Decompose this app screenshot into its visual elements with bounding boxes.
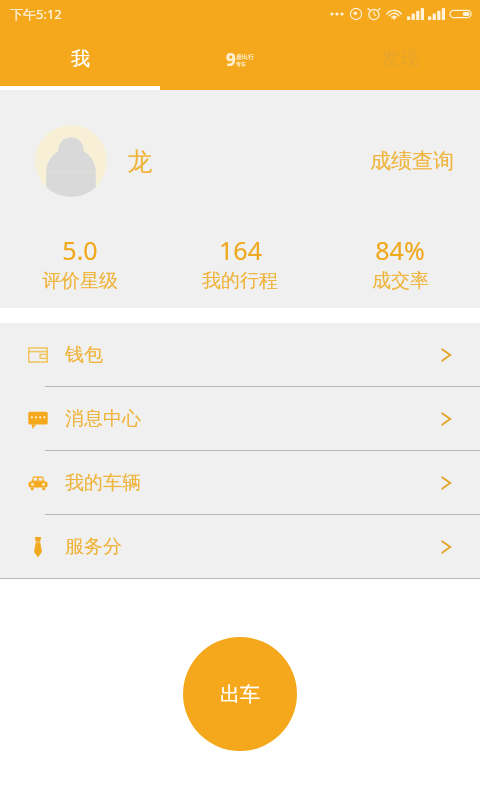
button[interactable]: 消息中心	[0, 387, 480, 450]
staticText: 座出行	[236, 53, 254, 61]
staticText: 钱包	[65, 343, 103, 367]
staticText: 服务分	[65, 535, 122, 559]
staticText: 发现	[381, 47, 419, 71]
staticText: 成交率	[372, 269, 429, 293]
staticText: 我	[71, 47, 90, 71]
button[interactable]: 我	[0, 28, 160, 90]
button[interactable]: 头像	[35, 125, 107, 197]
button[interactable]: 出车	[183, 637, 297, 751]
staticText: 9	[226, 48, 236, 71]
staticText: 84%	[375, 233, 425, 267]
staticText: 出车	[220, 682, 260, 707]
button[interactable]: 164	[160, 233, 320, 293]
staticText: 我的车辆	[65, 471, 141, 495]
staticText: 龙	[127, 146, 152, 177]
staticText: 评价星级	[42, 269, 118, 293]
staticText: 成绩查询	[370, 148, 454, 174]
staticText: 消息中心	[65, 407, 141, 431]
button[interactable]: 钱包	[0, 323, 480, 386]
button[interactable]: 服务分	[0, 515, 480, 578]
button[interactable]: 5.0	[0, 233, 160, 293]
button[interactable]: 84%	[320, 233, 480, 293]
button[interactable]: 我的车辆	[0, 451, 480, 514]
staticText: 5.0	[62, 233, 98, 267]
staticText: 专车	[236, 61, 246, 67]
button[interactable]: 成绩查询	[366, 144, 458, 178]
button[interactable]: 9座出行	[160, 28, 320, 90]
staticText: 下午5:12	[10, 5, 62, 23]
staticText: 我的行程	[202, 269, 278, 293]
staticText: 164	[219, 233, 262, 267]
